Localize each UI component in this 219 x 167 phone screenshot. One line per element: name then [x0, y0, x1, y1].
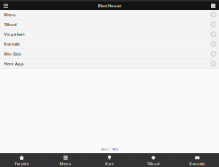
- button[interactable]: Menu: [44, 154, 87, 167]
- button[interactable]: Web: [112, 148, 118, 151]
- staticText: Kort: [105, 161, 114, 166]
- staticText: Kontakt: [189, 161, 205, 166]
- button[interactable]: Options: [207, 2, 219, 10]
- staticText: Mobil: [101, 148, 109, 151]
- button[interactable]: Forside: [0, 154, 43, 167]
- button[interactable]: Kort: [88, 154, 131, 167]
- staticText: Kontakt: [4, 41, 20, 47]
- staticText: Menu: [4, 12, 16, 17]
- button[interactable]: Hent App: [0, 59, 219, 69]
- staticText: Forside: [15, 161, 29, 166]
- button[interactable]: Menu: [0, 2, 12, 10]
- button[interactable]: Tilbud: [0, 20, 219, 30]
- staticText: Vis på kort: [4, 32, 25, 37]
- button[interactable]: Min Side: [0, 49, 219, 59]
- staticText: Hent App: [4, 61, 24, 66]
- staticText: Blue House: [98, 3, 121, 8]
- button[interactable]: Tilbud: [132, 154, 175, 167]
- button[interactable]: Menu: [0, 10, 219, 20]
- staticText: Menu: [60, 161, 72, 166]
- button[interactable]: Kontakt: [176, 154, 219, 167]
- staticText: Web: [112, 148, 118, 151]
- button[interactable]: Kontakt: [0, 39, 219, 49]
- staticText: Tilbud: [147, 161, 160, 166]
- staticText: Tilbud: [4, 22, 17, 27]
- staticText: Min Side: [4, 51, 21, 56]
- button[interactable]: Vis på kort: [0, 30, 219, 39]
